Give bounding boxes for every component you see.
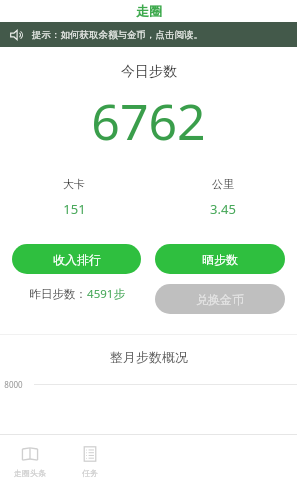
staticText: 8000 [4, 379, 23, 390]
button[interactable]: 走圈头条 [0, 440, 60, 482]
staticText: 走圈 [136, 3, 162, 19]
staticText: 晒步数 [202, 252, 238, 267]
button[interactable]: 收入排行 [12, 244, 141, 274]
staticText: 3.45 [210, 200, 236, 218]
staticText: 兑换金币 [196, 292, 244, 307]
button[interactable]: Announcement [0, 22, 297, 47]
staticText: 4591步 [87, 286, 125, 302]
staticText: 提示：如何获取余额与金币，点击阅读。 [32, 29, 203, 41]
staticText: 走圈头条 [14, 468, 46, 478]
staticText: 大卡 [63, 177, 85, 191]
staticText: 任务 [82, 468, 98, 478]
staticText: 昨日步数： [29, 287, 87, 301]
staticText: 6762 [91, 87, 206, 155]
staticText: 收入排行 [53, 252, 101, 267]
staticText: 今日步数 [121, 63, 177, 81]
button[interactable]: 晒步数 [155, 244, 285, 274]
button[interactable]: 任务 [60, 440, 120, 482]
other: Announcement [8, 27, 24, 43]
staticText: 整月步数概况 [110, 349, 188, 365]
button[interactable]: 兑换金币 [155, 284, 285, 314]
other: 走圈头条 [20, 444, 40, 464]
other: 任务 [80, 444, 100, 464]
staticText: 公里 [212, 177, 234, 191]
staticText: 151 [63, 200, 86, 218]
